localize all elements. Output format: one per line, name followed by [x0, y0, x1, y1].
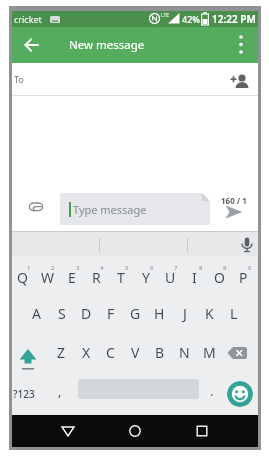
staticText: U [165, 268, 176, 287]
staticText: Type message [73, 202, 147, 217]
button[interactable] [222, 203, 246, 221]
button[interactable]: A [24, 294, 49, 332]
staticText: 12:22 PM [212, 12, 256, 26]
staticText: 5 [125, 264, 129, 272]
staticText: 2 [51, 264, 55, 272]
staticText: Q [17, 268, 28, 287]
staticText: I [192, 268, 197, 287]
staticText: X [82, 343, 91, 362]
button[interactable]: C [98, 333, 123, 371]
button[interactable] [123, 420, 147, 442]
staticText: 42% [182, 13, 200, 25]
button[interactable] [60, 193, 210, 225]
button[interactable]: R [84, 260, 109, 294]
button[interactable]: W [35, 260, 60, 294]
staticText: O [214, 268, 225, 287]
button[interactable]: V [123, 333, 148, 371]
button[interactable]: S [49, 294, 74, 332]
staticText: K [205, 304, 214, 323]
staticText: B [155, 343, 165, 362]
button[interactable]: M [197, 333, 222, 371]
button[interactable]: I [182, 260, 207, 294]
button[interactable]: . [202, 378, 222, 403]
button[interactable]: D [74, 294, 99, 332]
button[interactable]: K [197, 294, 222, 332]
staticText: 4 [100, 264, 104, 272]
staticText: D [81, 304, 92, 323]
button[interactable] [227, 381, 253, 407]
staticText: Y [142, 268, 150, 287]
button[interactable]: F [98, 294, 123, 332]
button[interactable] [222, 340, 252, 366]
staticText: P [239, 268, 248, 287]
staticText: R [92, 268, 101, 287]
staticText: A [32, 304, 41, 323]
staticText: T [117, 268, 125, 287]
staticText: W [41, 268, 55, 287]
button[interactable]: H [147, 294, 172, 332]
staticText: . [210, 382, 214, 400]
staticText: Z [57, 343, 66, 362]
staticText: J [183, 304, 187, 323]
button[interactable] [226, 68, 254, 92]
button[interactable] [238, 234, 256, 255]
staticText: V [131, 343, 140, 362]
staticText: 6 [150, 264, 154, 272]
button[interactable] [190, 420, 214, 442]
staticText: , [58, 382, 62, 400]
staticText: 0 [248, 264, 252, 272]
button[interactable] [12, 63, 258, 96]
staticText: 1 [27, 264, 31, 272]
button[interactable]: U [158, 260, 183, 294]
staticText: 8 [199, 264, 203, 272]
staticText: S [58, 304, 66, 323]
staticText: New message [69, 37, 145, 53]
staticText: To [14, 73, 24, 85]
button[interactable]: B [147, 333, 172, 371]
button[interactable]: Q [10, 260, 35, 294]
button[interactable]: P [231, 260, 256, 294]
button[interactable] [230, 30, 252, 60]
button[interactable]: E [59, 260, 84, 294]
staticText: cricket [14, 13, 42, 25]
staticText: LTE [161, 12, 170, 19]
button[interactable]: O [207, 260, 232, 294]
staticText: H [154, 304, 165, 323]
staticText: E [68, 268, 76, 287]
button[interactable]: X [74, 333, 99, 371]
button[interactable]: L [221, 294, 246, 332]
staticText: 3 [76, 264, 80, 272]
staticText: G [130, 304, 141, 323]
button[interactable]: ?123 [10, 381, 38, 406]
button[interactable] [16, 340, 44, 372]
button[interactable]: , [50, 378, 70, 403]
button[interactable] [56, 420, 80, 442]
button[interactable]: N [172, 333, 197, 371]
staticText: L [230, 304, 238, 323]
button[interactable]: J [172, 294, 197, 332]
button[interactable]: G [123, 294, 148, 332]
button[interactable] [24, 196, 48, 216]
button[interactable] [18, 33, 44, 57]
button[interactable]: Z [49, 333, 74, 371]
staticText: N [179, 343, 190, 362]
button[interactable]: T [108, 260, 133, 294]
staticText: C [106, 343, 115, 362]
staticText: 160 / 1 [221, 195, 247, 206]
staticText: M [203, 343, 216, 362]
staticText: 7 [174, 264, 178, 272]
button[interactable]: Y [133, 260, 158, 294]
staticText: F [107, 304, 115, 323]
staticText: ?123 [13, 387, 35, 401]
staticText: 9 [223, 264, 227, 272]
